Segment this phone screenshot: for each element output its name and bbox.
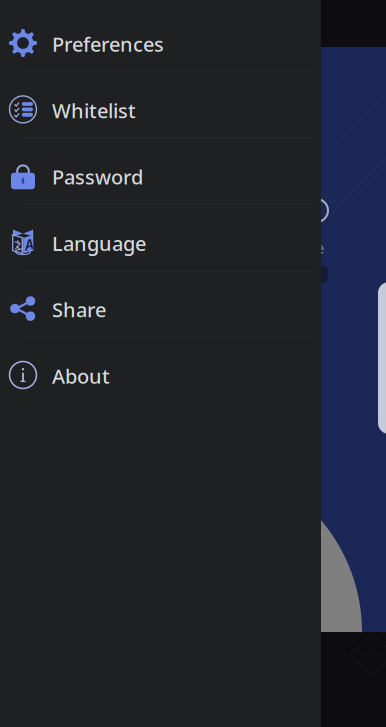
staticText: e (316, 238, 324, 257)
staticText: Password (52, 163, 143, 190)
button[interactable]: Password (0, 143, 321, 209)
button[interactable]: About (0, 342, 321, 408)
button[interactable]: Preferences (0, 10, 321, 76)
staticText: Share (52, 296, 106, 323)
staticText: About (52, 363, 110, 389)
staticText: Preferences (52, 31, 164, 57)
staticText: Whitelist (52, 97, 136, 124)
button[interactable]: Language (0, 209, 321, 275)
staticText: Language (52, 230, 146, 256)
button[interactable]: Share (0, 275, 321, 342)
button[interactable]: Whitelist (0, 76, 321, 143)
